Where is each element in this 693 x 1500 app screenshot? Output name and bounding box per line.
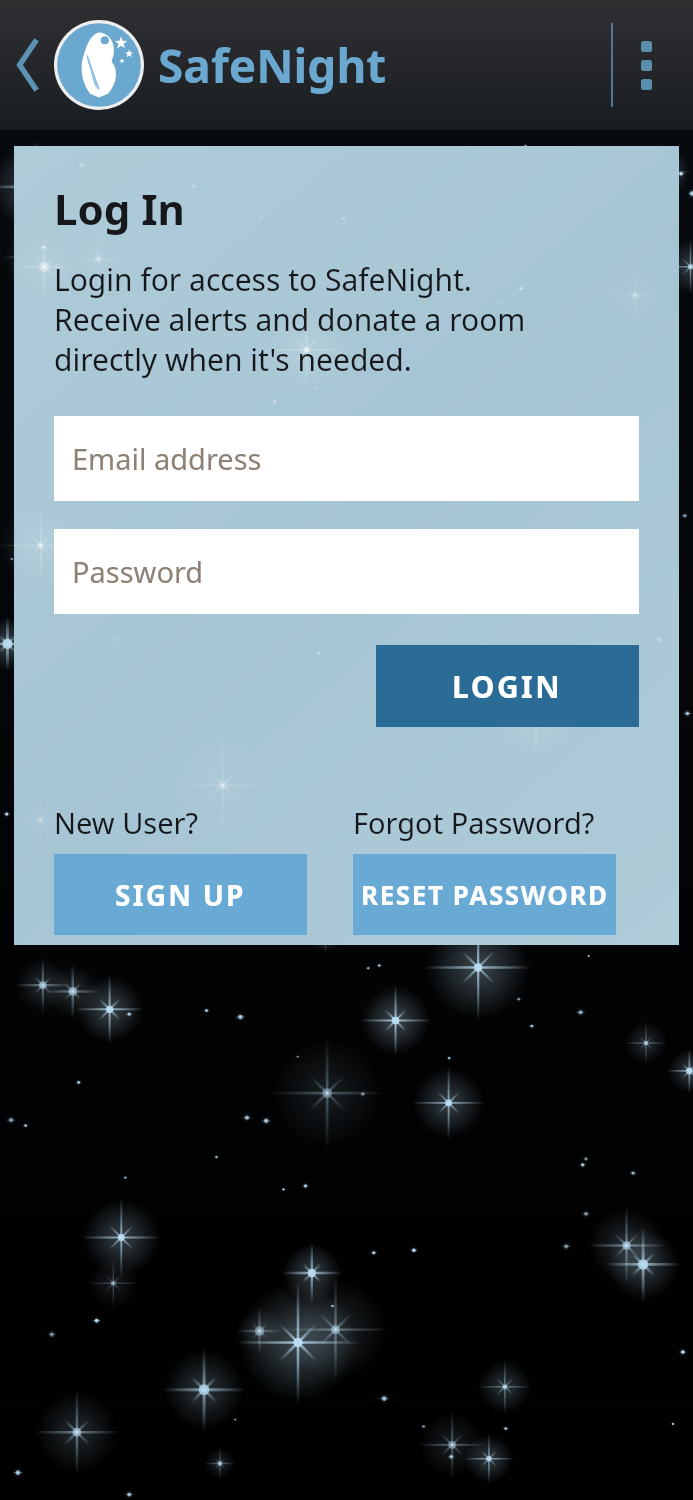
button[interactable]: Email address [54,416,639,501]
button[interactable]: RESET PASSWORD [353,854,616,935]
button[interactable]: SafeNight logo [50,16,148,114]
staticText: New User? [54,803,199,842]
staticText: SIGN UP [115,876,246,914]
staticText: RESET PASSWORD [361,877,609,912]
button[interactable]: Password [54,529,639,614]
staticText: Login for access to SafeNight. Receive a… [54,259,526,380]
staticText: Password [72,552,204,591]
staticText: Log In [54,180,185,237]
button[interactable]: Navigate up [6,17,50,113]
button[interactable]: More options [613,10,679,120]
button[interactable]: LOGIN [376,645,639,727]
button[interactable]: SIGN UP [54,854,307,935]
staticText: Forgot Password? [353,803,595,842]
staticText: Email address [72,439,262,478]
staticText: LOGIN [452,666,563,707]
staticText: SafeNight [158,34,387,97]
